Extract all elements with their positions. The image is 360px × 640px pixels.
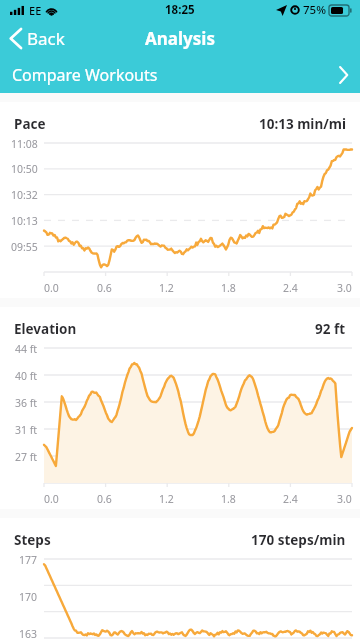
staticText: 10:13 xyxy=(11,214,38,228)
staticText: 2.4 xyxy=(283,281,298,295)
staticText: 10:32 xyxy=(11,188,38,202)
staticText: 0.0 xyxy=(44,492,59,506)
staticText: Pace xyxy=(14,115,46,133)
other: Open compare workouts xyxy=(339,67,348,83)
staticText: Analysis xyxy=(145,27,215,50)
staticText: Back xyxy=(27,27,65,50)
staticText: 31 ft xyxy=(15,423,38,437)
staticText: 170 xyxy=(19,590,38,604)
staticText: 44 ft xyxy=(15,342,38,356)
staticText: 2.4 xyxy=(283,492,298,506)
staticText: 163 xyxy=(19,627,38,640)
staticText: EE xyxy=(29,3,42,18)
staticText: 0.6 xyxy=(97,492,112,506)
staticText: 92 ft xyxy=(315,320,346,338)
staticText: 18:25 xyxy=(165,2,195,18)
staticText: 0.6 xyxy=(97,281,112,295)
staticText: 10:50 xyxy=(11,162,38,176)
staticText: 3.0 xyxy=(337,492,352,506)
staticText: 1.8 xyxy=(221,492,236,506)
staticText: 40 ft xyxy=(15,369,38,383)
button[interactable]: Compare Workouts xyxy=(0,56,360,93)
staticText: 09:55 xyxy=(11,240,38,254)
staticText: Elevation xyxy=(14,320,77,338)
staticText: 3.0 xyxy=(337,281,352,295)
staticText: Steps xyxy=(14,531,51,549)
staticText: 27 ft xyxy=(15,450,38,464)
staticText: 1.2 xyxy=(159,281,174,295)
staticText: 170 steps/min xyxy=(251,531,346,549)
staticText: 36 ft xyxy=(15,396,38,410)
staticText: 75% xyxy=(303,2,326,18)
staticText: 177 xyxy=(19,553,38,567)
button[interactable]: Back xyxy=(0,22,79,55)
staticText: 0.0 xyxy=(44,281,59,295)
staticText: 10:13 min/mi xyxy=(259,115,346,133)
staticText: 1.8 xyxy=(221,281,236,295)
staticText: 1.2 xyxy=(159,492,174,506)
staticText: Compare Workouts xyxy=(12,64,158,86)
staticText: 11:08 xyxy=(11,137,38,151)
